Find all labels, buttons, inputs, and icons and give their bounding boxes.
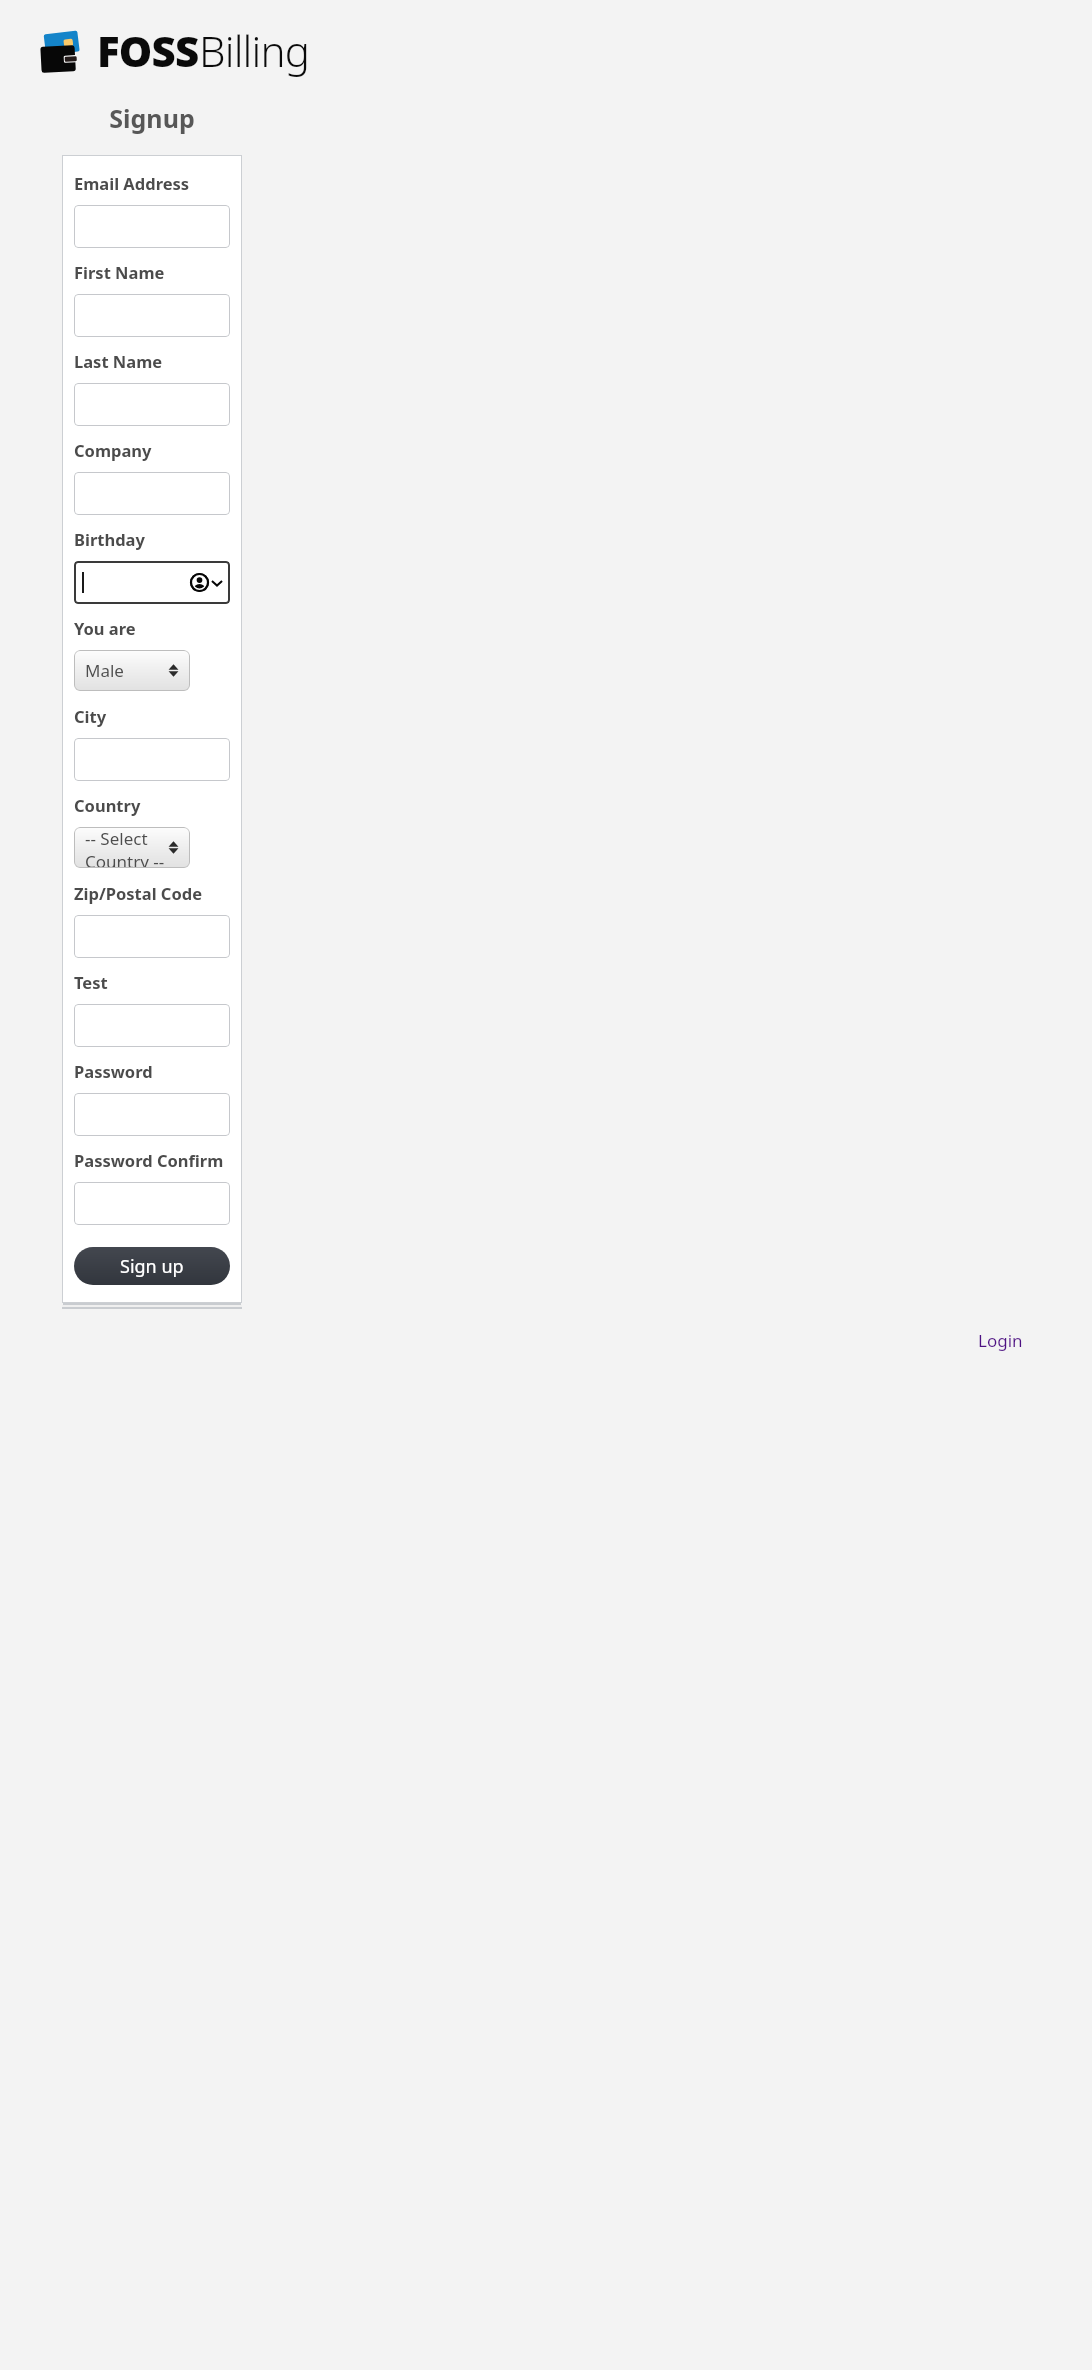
staticText: City [74,705,107,727]
staticText: Birthday [74,528,145,550]
staticText: Password [74,1060,153,1082]
button[interactable] [74,1093,230,1136]
button[interactable]: Sign up [74,1247,230,1285]
button[interactable] [74,915,230,958]
staticText: Test [74,971,108,993]
other: Choose birthday [190,573,223,592]
staticText: Country [74,794,141,816]
button[interactable] [74,738,230,781]
button[interactable] [74,205,230,248]
staticText: You are [74,617,136,639]
staticText: Male [85,659,124,682]
button[interactable]: -- Select Country -- [74,827,190,868]
button[interactable]: Male [74,650,190,691]
staticText: Password Confirm [74,1149,224,1171]
staticText: Billing [199,22,310,79]
staticText: FOSS [97,22,199,79]
staticText: Company [74,439,152,461]
button[interactable] [74,472,230,515]
staticText: Login [978,1329,1023,1352]
button[interactable] [74,1182,230,1225]
button[interactable] [74,294,230,337]
button[interactable] [74,1004,230,1047]
staticText: Zip/Postal Code [74,882,203,904]
staticText: Signup [62,101,242,135]
button[interactable]: Choose birthday [74,561,230,604]
staticText: Sign up [120,1254,184,1279]
staticText: -- Select Country -- [85,827,179,868]
button[interactable]: Login [978,1329,1023,1352]
staticText: Last Name [74,350,163,372]
button[interactable] [74,383,230,426]
staticText: Email Address [74,172,190,194]
staticText: First Name [74,261,165,283]
